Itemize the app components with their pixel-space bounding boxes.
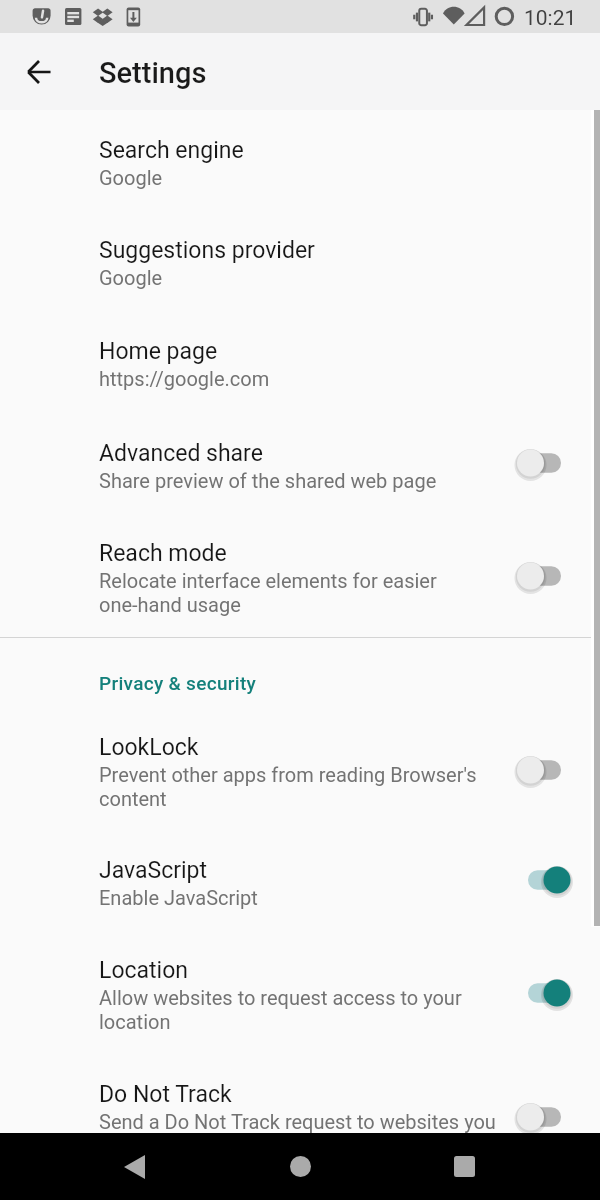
staticText: Relocate interface elements for easier o… (99, 569, 498, 617)
staticText: Google (99, 166, 163, 189)
staticText: Prevent other apps from reading Browser'… (99, 763, 498, 811)
staticText: Privacy & security (99, 672, 257, 694)
button[interactable]: Navigate up (15, 48, 63, 96)
staticText: https://google.com (99, 367, 270, 390)
button[interactable]: LookLock (0, 700, 600, 811)
staticText: Google (99, 266, 163, 289)
staticText: Do Not Track (99, 1081, 232, 1108)
button[interactable]: On (498, 858, 599, 902)
staticText: Enable JavaScript (99, 886, 258, 909)
staticText: LookLock (99, 734, 199, 761)
button[interactable]: Home page (0, 289, 600, 390)
button[interactable]: Back (94, 1133, 174, 1200)
button[interactable]: On (498, 971, 599, 1015)
button[interactable]: JavaScript (0, 811, 600, 909)
button[interactable]: Off (498, 441, 599, 485)
staticText: Send a Do Not Track request to websites … (99, 1110, 498, 1158)
staticText: Home page (99, 338, 218, 365)
button[interactable]: Privacy & security (0, 638, 600, 700)
staticText: Share preview of the shared web page (99, 469, 437, 492)
staticText: Suggestions provider (99, 237, 315, 264)
button[interactable]: Advanced share (0, 390, 600, 492)
button[interactable]: Suggestions provider (0, 189, 600, 289)
button[interactable]: Off (498, 748, 599, 792)
staticText: Reach mode (99, 540, 227, 567)
button[interactable]: Location (0, 909, 600, 1034)
button[interactable]: Off (498, 1095, 599, 1139)
button[interactable]: Do Not Track (0, 1034, 600, 1158)
staticText: Location (99, 957, 188, 984)
staticText: Settings (99, 56, 207, 90)
button[interactable]: Reach mode (0, 492, 600, 617)
staticText: Allow websites to request access to your… (99, 986, 498, 1034)
staticText: Advanced share (99, 440, 263, 467)
staticText: JavaScript (99, 857, 208, 884)
staticText: Search engine (99, 137, 244, 164)
button[interactable]: Search engine (0, 110, 600, 189)
button[interactable]: Home (260, 1133, 340, 1200)
staticText: 10:21 (524, 6, 577, 31)
button[interactable]: Recent apps (424, 1133, 504, 1200)
button[interactable]: Off (498, 554, 599, 598)
